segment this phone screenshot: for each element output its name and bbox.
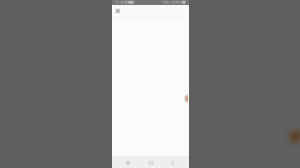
button[interactable]: Back: [122, 157, 134, 168]
button[interactable]: Close: [113, 6, 123, 16]
button[interactable]: Recents: [167, 157, 179, 168]
button[interactable]: Home: [145, 157, 157, 168]
